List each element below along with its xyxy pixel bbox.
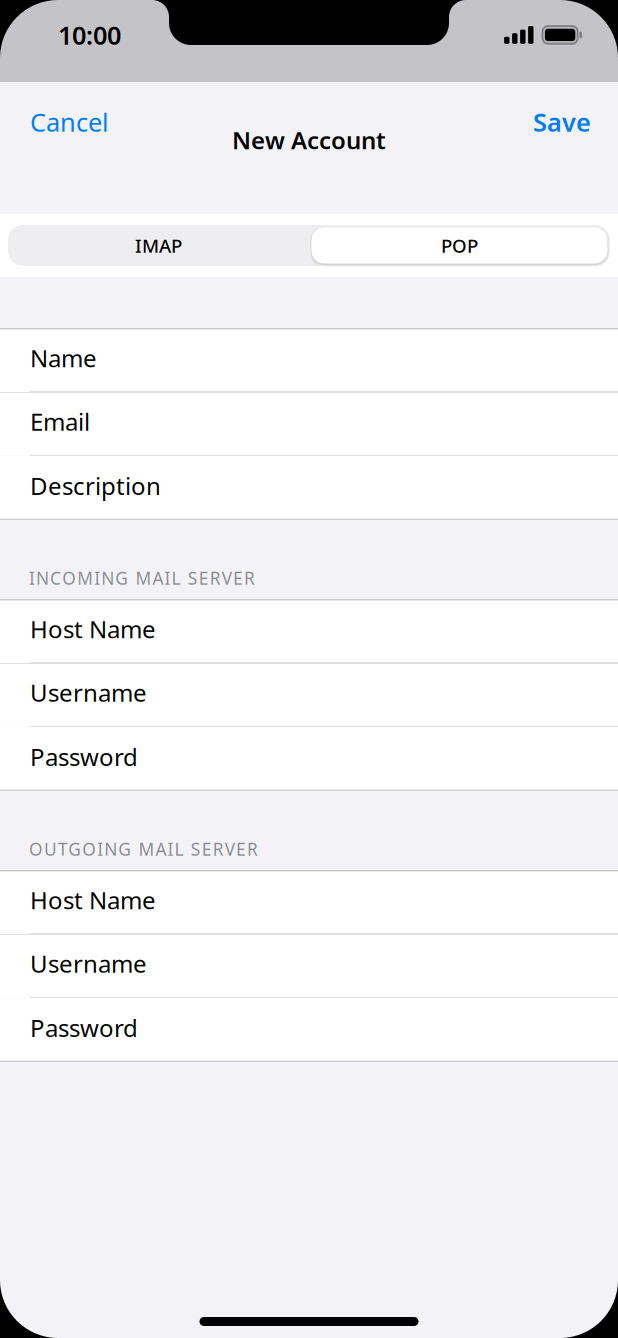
staticText: Host Name xyxy=(30,613,156,645)
staticText: IMAP xyxy=(135,233,182,258)
button[interactable]: Email xyxy=(0,392,618,456)
button[interactable]: Password xyxy=(0,727,618,791)
staticText: Password xyxy=(30,741,138,773)
staticText: Username xyxy=(30,677,147,708)
button[interactable]: Save xyxy=(517,100,618,144)
button[interactable]: Host Name xyxy=(0,870,618,934)
staticText: Password xyxy=(30,1012,138,1044)
staticText: Name xyxy=(30,342,97,374)
button[interactable]: Cancel xyxy=(0,100,125,144)
staticText: 10:00 xyxy=(58,18,121,52)
button[interactable]: Host Name xyxy=(0,599,618,663)
button[interactable]: Username xyxy=(0,934,618,998)
button[interactable]: IMAP xyxy=(8,225,309,266)
staticText: INCOMING MAIL SERVER xyxy=(29,566,255,589)
button[interactable]: Name xyxy=(0,328,618,392)
staticText: Description xyxy=(30,470,161,502)
staticText: POP xyxy=(441,233,478,258)
staticText: Email xyxy=(30,406,90,437)
staticText: OUTGOING MAIL SERVER xyxy=(29,837,258,860)
button[interactable]: Username xyxy=(0,663,618,727)
button[interactable]: POP xyxy=(309,225,610,266)
staticText: Host Name xyxy=(30,884,156,916)
button[interactable]: Password xyxy=(0,998,618,1062)
staticText: Save xyxy=(533,105,591,139)
staticText: Cancel xyxy=(30,105,109,139)
button[interactable]: Description xyxy=(0,456,618,519)
staticText: Username xyxy=(30,948,147,979)
staticText: New Account xyxy=(232,124,386,156)
